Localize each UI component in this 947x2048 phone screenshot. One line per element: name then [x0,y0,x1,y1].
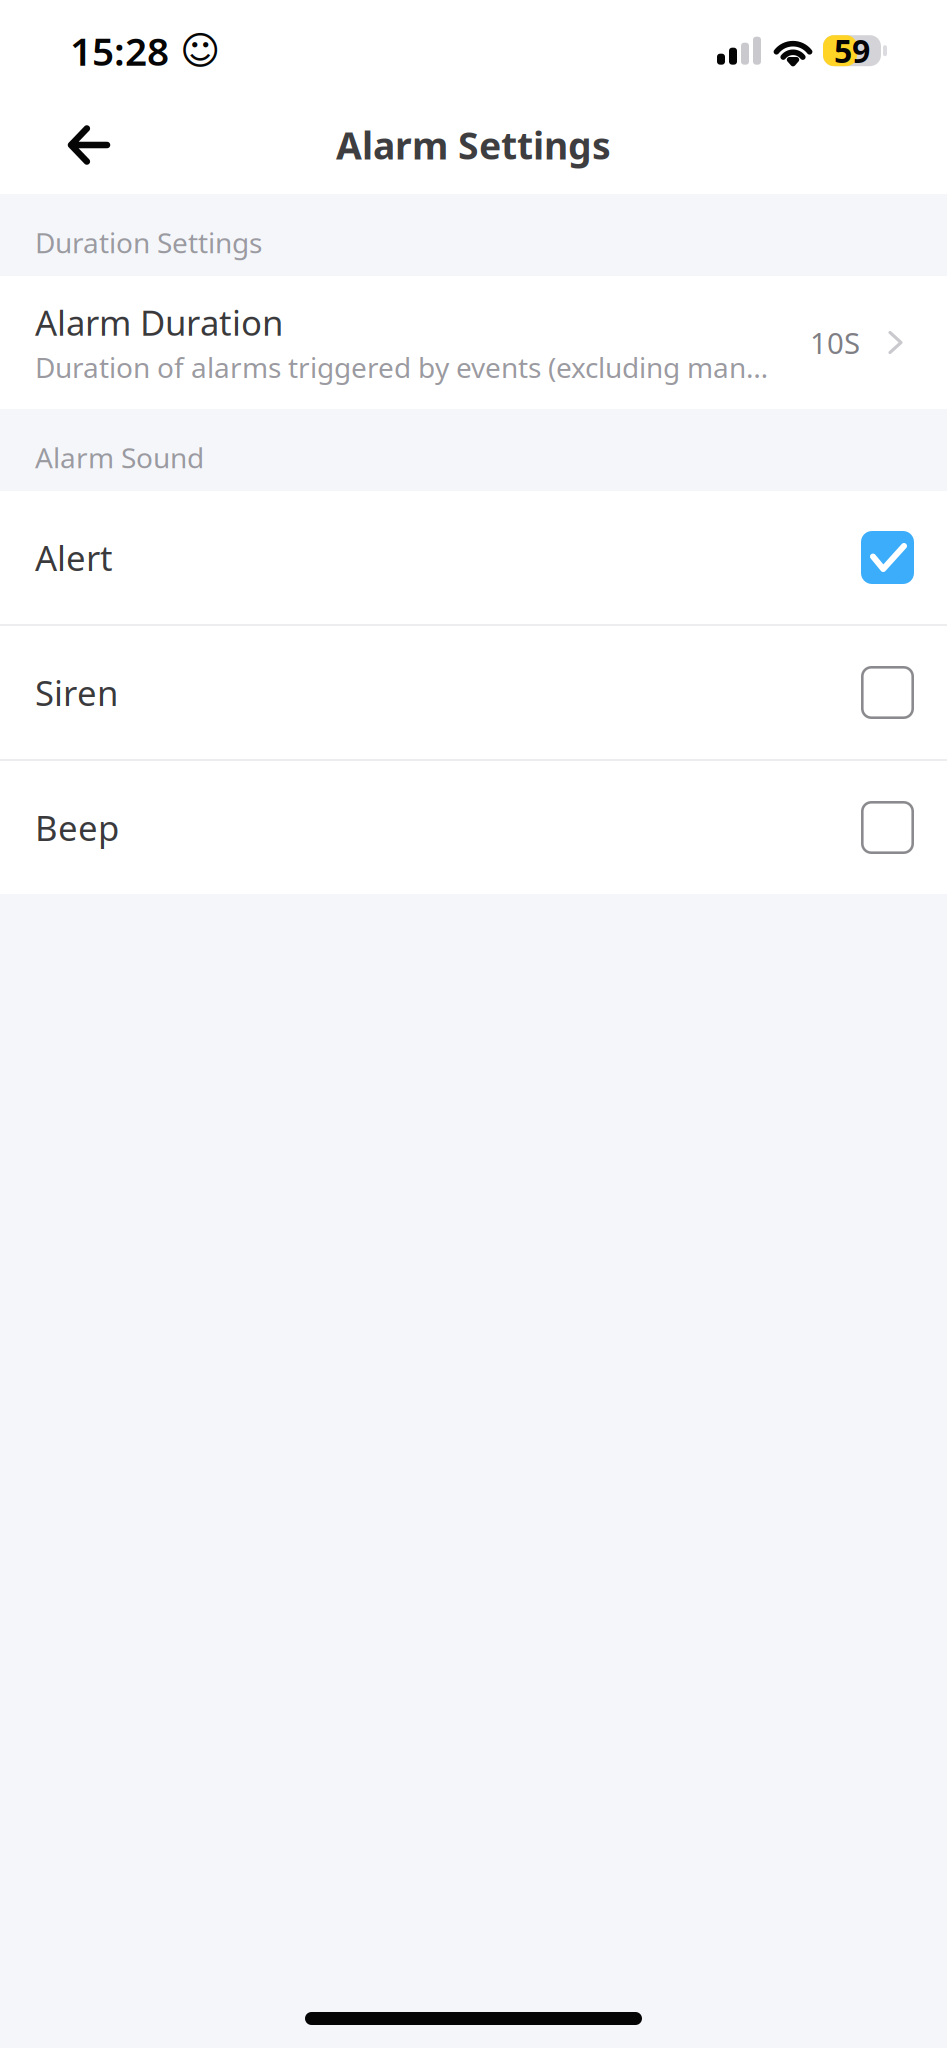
button[interactable]: Beep [0,761,947,894]
staticText: Alert [35,534,113,580]
staticText: Alarm Duration [35,299,283,345]
button[interactable]: Back [47,104,131,185]
staticText: Alarm Settings [336,120,611,170]
staticText: Siren [35,669,118,715]
button[interactable]: Siren [0,626,947,759]
staticText: Duration Settings [35,224,262,261]
staticText: Beep [35,804,119,850]
button[interactable]: Alarm Duration [0,276,947,409]
staticText: Alarm Sound [35,439,204,476]
staticText: 15:28 [70,25,169,76]
button[interactable]: Alert [0,491,947,624]
staticText: ☺ [180,29,220,73]
staticText: 59 [834,29,870,72]
staticText: Duration of alarms triggered by events (… [35,348,768,386]
staticText: 10S [810,323,860,362]
